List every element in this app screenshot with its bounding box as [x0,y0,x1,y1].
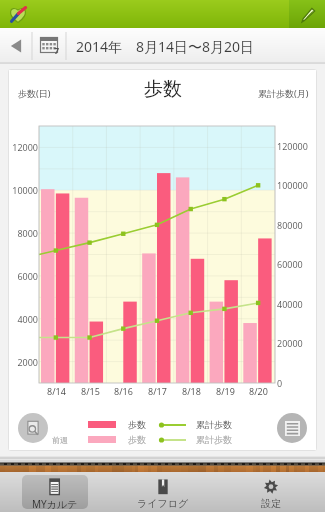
staticText: 歩数 [128,434,146,445]
staticText: 12000 [12,141,38,153]
other: App logo [8,4,28,24]
staticText: 累計歩数 [196,419,232,430]
staticText: 0 [277,377,283,389]
button[interactable]: Calendar [32,28,66,64]
staticText: 設定 [261,497,281,509]
staticText: 8/16 [114,385,133,397]
staticText: 20000 [277,337,303,349]
staticText: 8/19 [216,385,235,397]
staticText: 累計歩数 [196,434,232,445]
staticText: 4000 [17,313,38,325]
button[interactable]: Report [18,413,48,443]
staticText: 8/17 [148,385,167,397]
button[interactable]: MYカルテ [22,475,88,509]
button[interactable]: 設定 [251,475,291,509]
staticText: 8/18 [182,385,201,397]
button[interactable]: Previous week [0,28,32,64]
staticText: 8000 [17,227,38,239]
button[interactable]: ライフログ [127,475,199,509]
staticText: 歩数 [128,419,146,430]
staticText: 2014年 8月14日〜8月20日 [76,37,255,56]
staticText: 前週 [52,435,68,445]
staticText: 8/20 [249,385,268,397]
staticText: 歩数(日) [18,87,51,99]
staticText: 累計歩数(月) [258,87,309,99]
staticText: 10000 [12,184,38,196]
button[interactable]: Edit [289,0,325,28]
staticText: 100000 [277,179,308,191]
button[interactable]: Menu [277,413,307,443]
staticText: 60000 [277,258,303,270]
staticText: 8/15 [81,385,100,397]
staticText: 120000 [277,140,308,152]
staticText: MYカルテ [32,497,78,509]
staticText: 歩数 [144,77,182,101]
staticText: 80000 [277,219,303,231]
staticText: 40000 [277,298,303,310]
staticText: 6000 [17,270,38,282]
staticText: ライフログ [137,497,189,509]
staticText: 8/14 [47,385,66,397]
staticText: 7 [54,44,60,56]
staticText: 2000 [17,356,38,368]
